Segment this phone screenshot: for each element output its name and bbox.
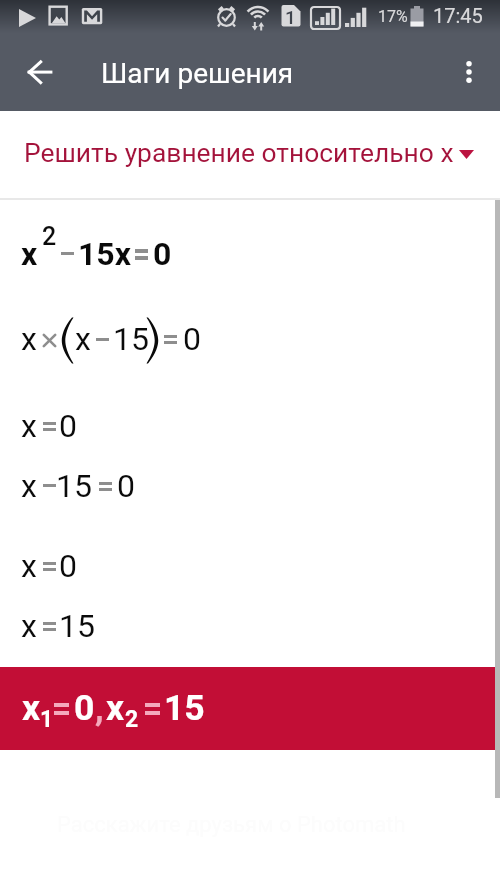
- staticText: x: [21, 407, 37, 445]
- staticText: 2: [125, 706, 139, 733]
- staticText: x: [21, 467, 37, 505]
- staticText: 0: [59, 547, 77, 585]
- button[interactable]: Решить уравнение относительно x: [0, 111, 500, 199]
- staticText: 15: [59, 607, 95, 645]
- staticText: 1: [285, 6, 296, 28]
- staticText: Решить уравнение относительно x: [24, 138, 454, 169]
- staticText: 0: [59, 407, 77, 445]
- staticText: 15: [113, 320, 149, 358]
- staticText: x: [106, 687, 125, 729]
- staticText: 0: [74, 687, 95, 729]
- staticText: 15: [56, 467, 92, 505]
- staticText: 0: [117, 467, 135, 505]
- staticText: ,: [95, 687, 104, 729]
- staticText: 1: [40, 706, 54, 733]
- button[interactable]: More options: [445, 48, 493, 96]
- staticText: x: [21, 607, 37, 645]
- staticText: 0: [153, 235, 172, 273]
- staticText: x: [75, 320, 91, 358]
- staticText: 17%: [378, 7, 408, 26]
- staticText: 17:45: [433, 4, 483, 27]
- staticText: Шаги решения: [101, 57, 294, 90]
- staticText: x: [22, 687, 41, 729]
- button[interactable]: Back: [12, 45, 68, 101]
- button[interactable]: [0, 667, 500, 750]
- staticText: 15x: [78, 235, 132, 273]
- staticText: x: [21, 547, 37, 585]
- staticText: 15: [164, 687, 205, 729]
- staticText: 2: [42, 222, 57, 251]
- staticText: 0: [183, 320, 201, 358]
- staticText: x: [21, 320, 37, 358]
- staticText: x: [21, 235, 38, 273]
